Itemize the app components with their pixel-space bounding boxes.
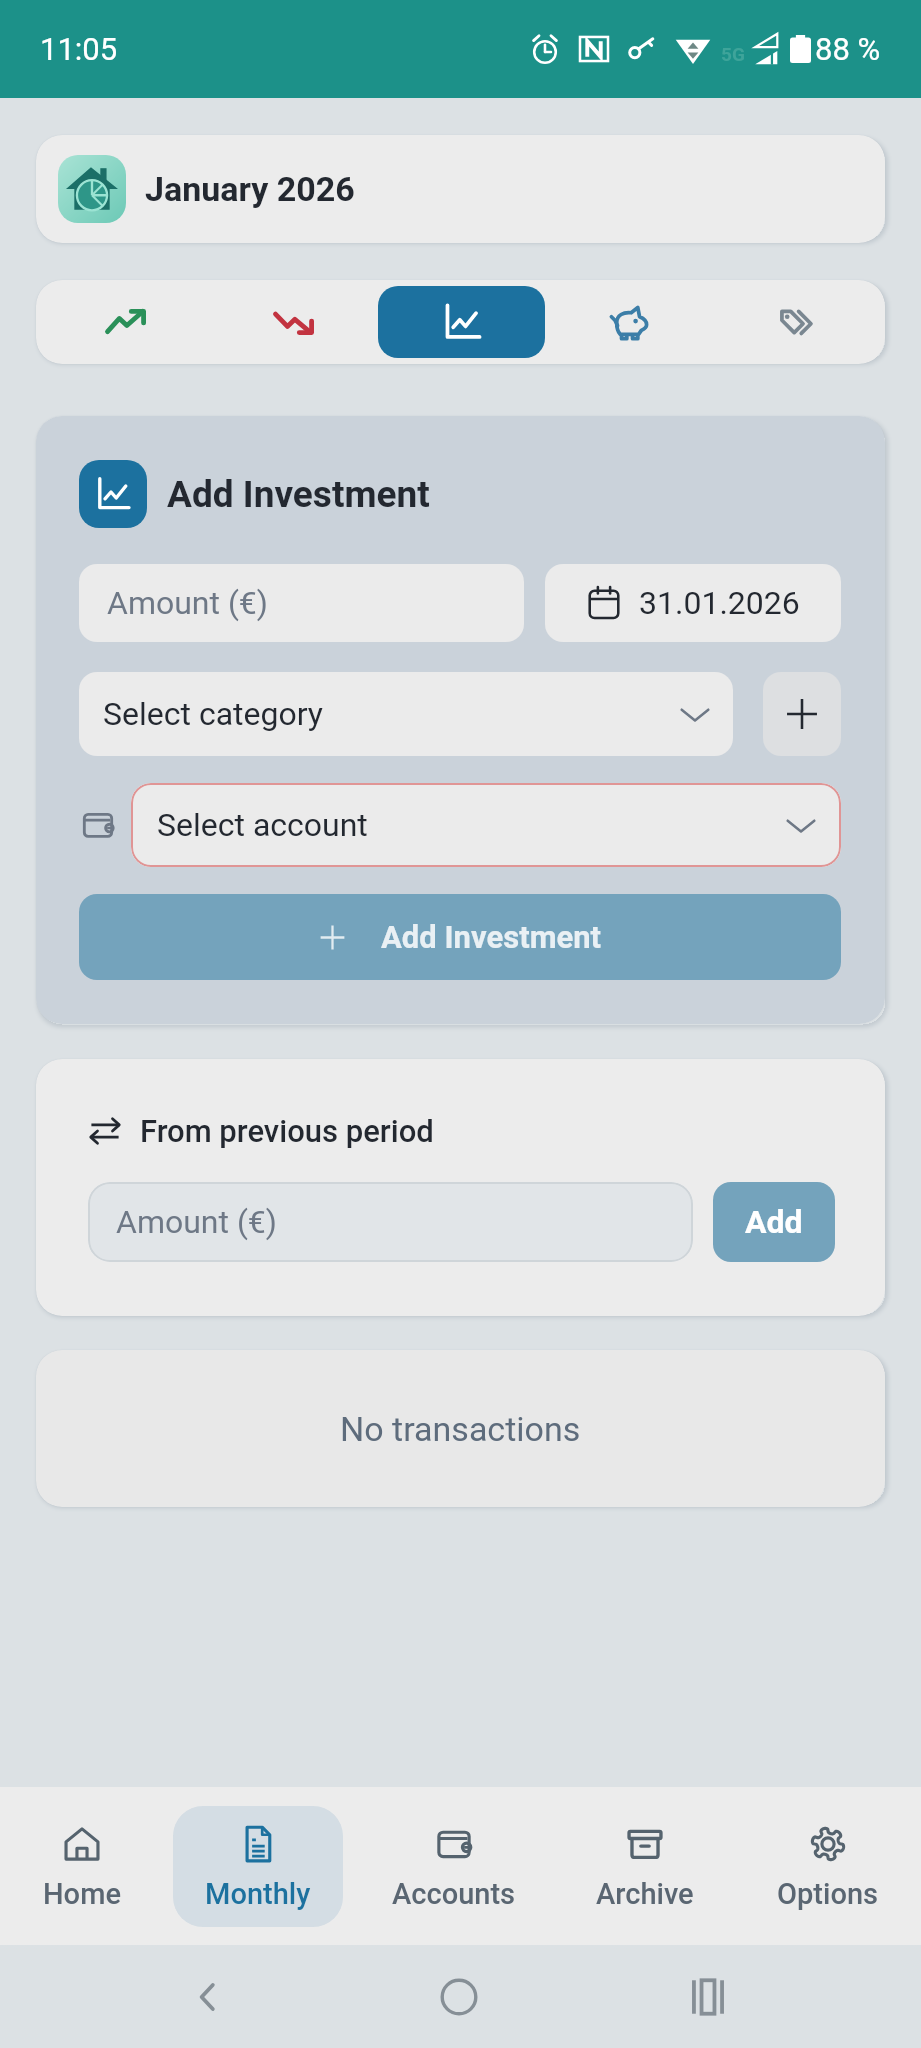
staticText: Add Investment (381, 919, 602, 955)
button[interactable]: Home (439, 1977, 479, 2017)
button[interactable]: Accounts (369, 1806, 539, 1927)
button[interactable]: Options (743, 1806, 913, 1927)
button[interactable]: Archive (560, 1806, 730, 1927)
staticText: Select account (157, 806, 368, 844)
staticText: Home (43, 1877, 121, 1911)
staticText: Select category (103, 695, 323, 733)
staticText: Amount (€) (107, 584, 268, 622)
staticText: 11:05 (40, 31, 118, 67)
button[interactable]: Recents (689, 1978, 727, 2016)
button[interactable]: Add (713, 1182, 835, 1262)
staticText: Add (745, 1203, 803, 1241)
staticText: 5G (721, 43, 745, 65)
staticText: 31.01.2026 (639, 584, 800, 622)
button[interactable]: Expenses (210, 286, 378, 358)
button[interactable]: Select category (79, 672, 733, 756)
button[interactable]: Add Investment (79, 894, 841, 980)
staticText: From previous period (140, 1113, 434, 1149)
button[interactable]: January 2026 (36, 135, 885, 243)
button[interactable]: Investments (378, 286, 545, 358)
button[interactable]: Monthly (173, 1806, 343, 1927)
staticText: Monthly (205, 1877, 311, 1911)
button[interactable]: Select account (131, 783, 841, 867)
button[interactable]: Amount (€) (88, 1182, 693, 1262)
staticText: Amount (€) (116, 1203, 277, 1241)
button[interactable]: Income (42, 286, 210, 358)
staticText: 88 % (815, 31, 881, 67)
button[interactable]: Savings (545, 286, 712, 358)
button[interactable]: 31.01.2026 (545, 564, 841, 642)
button[interactable]: Add category (763, 672, 841, 756)
button[interactable]: Categories (712, 286, 879, 358)
staticText: January 2026 (145, 169, 355, 209)
staticText: Accounts (392, 1877, 516, 1911)
staticText: Add Investment (167, 473, 430, 516)
button[interactable]: Back (188, 1977, 228, 2017)
staticText: Archive (596, 1877, 694, 1911)
staticText: Options (777, 1877, 879, 1911)
button[interactable]: Home (0, 1806, 167, 1927)
staticText: No transactions (340, 1409, 581, 1449)
button[interactable]: Amount (€) (79, 564, 524, 642)
